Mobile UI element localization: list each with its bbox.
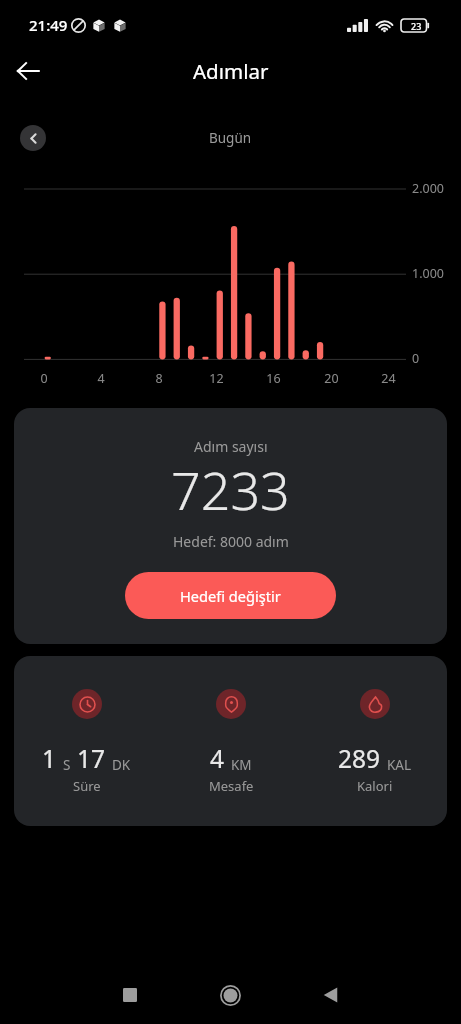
staticText: 8	[155, 370, 163, 387]
staticText: 24	[381, 370, 396, 387]
staticText: 23	[411, 20, 422, 32]
staticText: 1	[42, 742, 57, 775]
staticText: 7233	[171, 454, 290, 525]
staticText: 0	[40, 370, 48, 387]
staticText: KM	[231, 756, 252, 774]
staticText: Süre	[73, 777, 101, 795]
staticText: Bugün	[209, 129, 252, 147]
staticText: 16	[266, 370, 281, 387]
button[interactable]: 1	[14, 656, 159, 826]
button[interactable]: Previous day	[20, 125, 46, 151]
button[interactable]: Back	[306, 971, 354, 1019]
staticText: Adımlar	[193, 57, 269, 85]
staticText: 1.000	[412, 265, 444, 282]
button[interactable]: 4	[159, 656, 303, 826]
staticText: 289	[338, 742, 381, 775]
staticText: S	[63, 756, 71, 774]
staticText: Kalori	[357, 777, 393, 795]
staticText: 4	[210, 742, 225, 775]
staticText: Adım sayısı	[194, 437, 268, 456]
staticText: 17	[77, 742, 106, 775]
staticText: Hedef: 8000 adım	[173, 532, 289, 551]
button[interactable]: Home	[206, 971, 254, 1019]
button[interactable]: Hedefi değiştir	[125, 572, 336, 619]
button[interactable]: 289	[303, 656, 447, 826]
staticText: 20	[324, 370, 339, 387]
staticText: DK	[112, 756, 131, 774]
staticText: Hedefi değiştir	[180, 586, 281, 606]
staticText: 12	[209, 370, 224, 387]
staticText: Mesafe	[209, 777, 254, 795]
staticText: 2.000	[412, 180, 444, 197]
staticText: 21:49	[29, 15, 68, 35]
button[interactable]: Back	[6, 50, 50, 91]
staticText: KAL	[387, 756, 412, 774]
button[interactable]: Recents	[106, 971, 154, 1019]
staticText: 0	[412, 350, 420, 367]
staticText: 4	[97, 370, 105, 387]
